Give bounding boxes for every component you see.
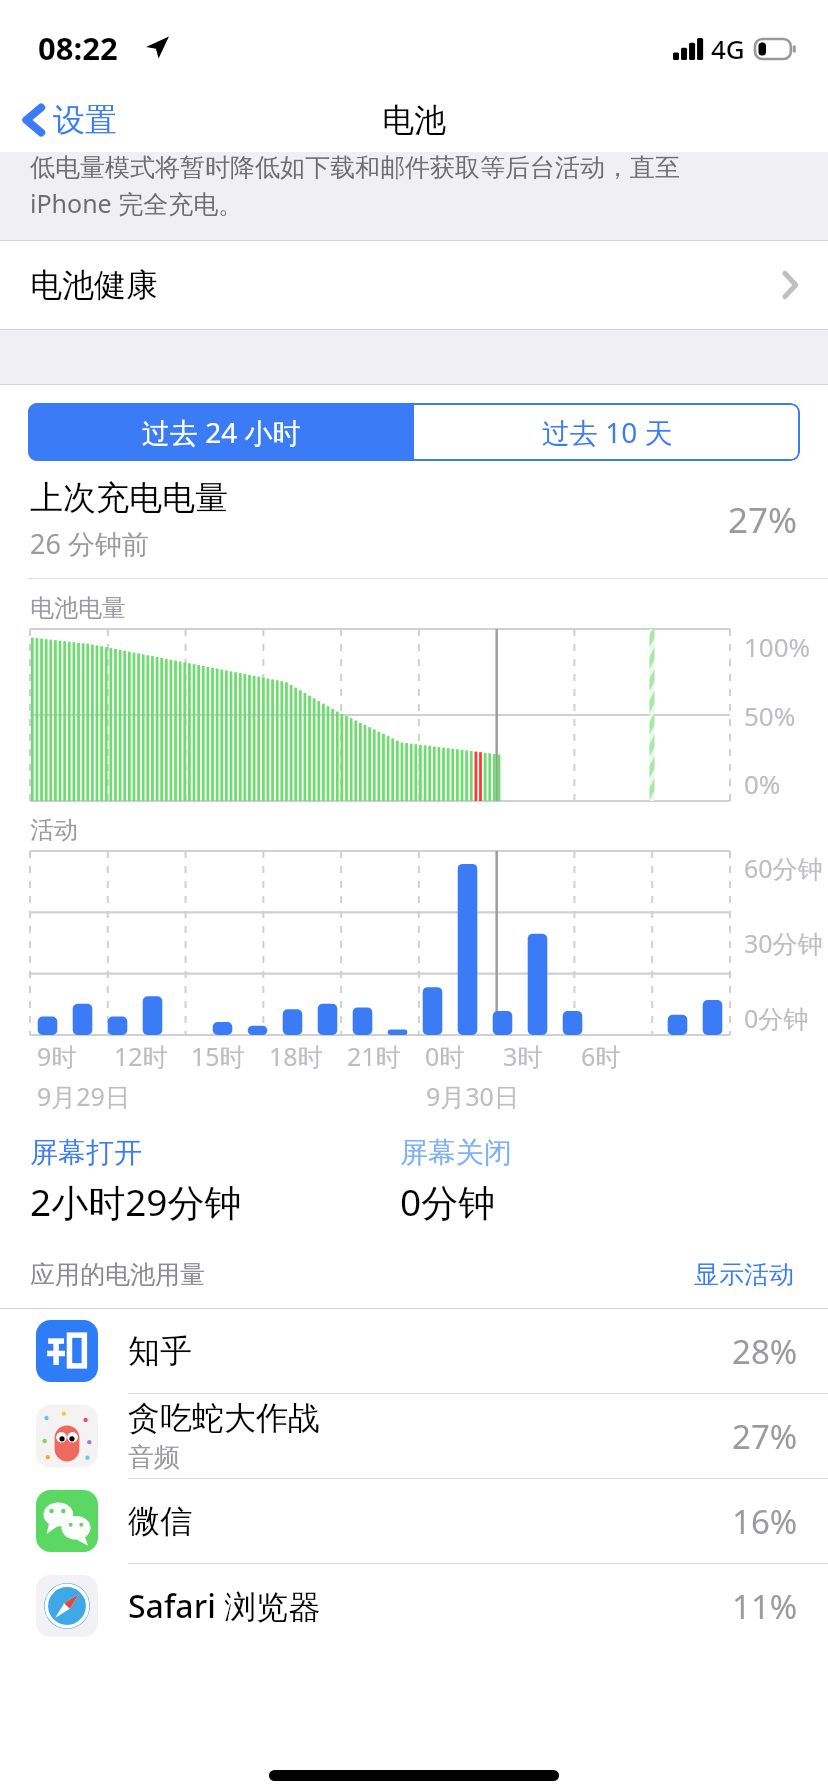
staticText: 应用的电池用量 <box>30 1259 205 1290</box>
staticText: 微信 <box>128 1501 192 1541</box>
staticText: 30分钟 <box>744 926 823 960</box>
staticText: 08:22 <box>38 27 118 69</box>
button[interactable]: 过去 10 天 <box>414 403 800 461</box>
button[interactable]: 过去 24 小时 <box>28 403 414 461</box>
staticText: 12时 <box>114 1039 168 1073</box>
staticText: 15时 <box>191 1039 245 1073</box>
staticText: 上次充电电量 <box>30 477 228 519</box>
staticText: 60分钟 <box>744 851 823 885</box>
staticText: 设置 <box>53 100 117 140</box>
button[interactable]: 显示活动 <box>690 1255 798 1294</box>
staticText: 3时 <box>503 1039 543 1073</box>
staticText: 电池 <box>382 100 446 140</box>
staticText: 16% <box>732 1499 798 1544</box>
staticText: 28% <box>732 1329 798 1374</box>
staticText: 9月30日 <box>426 1079 519 1113</box>
staticText: 0分钟 <box>744 1001 809 1035</box>
staticText: 18时 <box>269 1039 323 1073</box>
staticText: 9月29日 <box>37 1079 130 1113</box>
staticText: 11% <box>732 1584 798 1629</box>
button[interactable]: 微信 <box>0 1479 828 1563</box>
staticText: 4G <box>711 31 745 66</box>
staticText: 100% <box>744 629 811 664</box>
staticText: 0% <box>744 766 781 801</box>
button[interactable]: 设置 <box>18 94 121 146</box>
staticText: 6时 <box>581 1039 621 1073</box>
staticText: 0分钟 <box>400 1176 496 1227</box>
staticText: 0时 <box>425 1039 465 1073</box>
staticText: 过去 24 小时 <box>142 413 301 451</box>
staticText: 屏幕打开 <box>30 1135 142 1170</box>
staticText: 过去 10 天 <box>542 413 673 451</box>
staticText: 知乎 <box>128 1331 192 1371</box>
button[interactable]: 贪吃蛇大作战 <box>0 1394 828 1478</box>
staticText: 低电量模式将暂时降低如下载和邮件获取等后台活动，直至 iPhone 完全充电。 <box>30 152 680 221</box>
staticText: 50% <box>744 698 796 733</box>
button[interactable]: Safari 浏览器 <box>0 1564 828 1648</box>
staticText: 21时 <box>347 1039 401 1073</box>
staticText: 27% <box>732 1414 798 1459</box>
staticText: 显示活动 <box>694 1259 794 1290</box>
staticText: 电池健康 <box>30 265 158 305</box>
staticText: 音频 <box>128 1441 180 1474</box>
staticText: 27% <box>728 496 798 544</box>
staticText: 活动 <box>30 815 78 845</box>
staticText: 屏幕关闭 <box>400 1135 512 1170</box>
staticText: 9时 <box>37 1039 77 1073</box>
staticText: 2小时29分钟 <box>30 1176 242 1227</box>
staticText: 电池电量 <box>30 593 126 623</box>
button[interactable]: 知乎 <box>0 1309 828 1393</box>
button[interactable]: 电池健康 <box>0 241 828 329</box>
other: Location <box>144 34 170 60</box>
staticText: 贪吃蛇大作战 <box>128 1398 320 1438</box>
staticText: Safari 浏览器 <box>128 1584 321 1628</box>
staticText: 26 分钟前 <box>30 525 149 562</box>
